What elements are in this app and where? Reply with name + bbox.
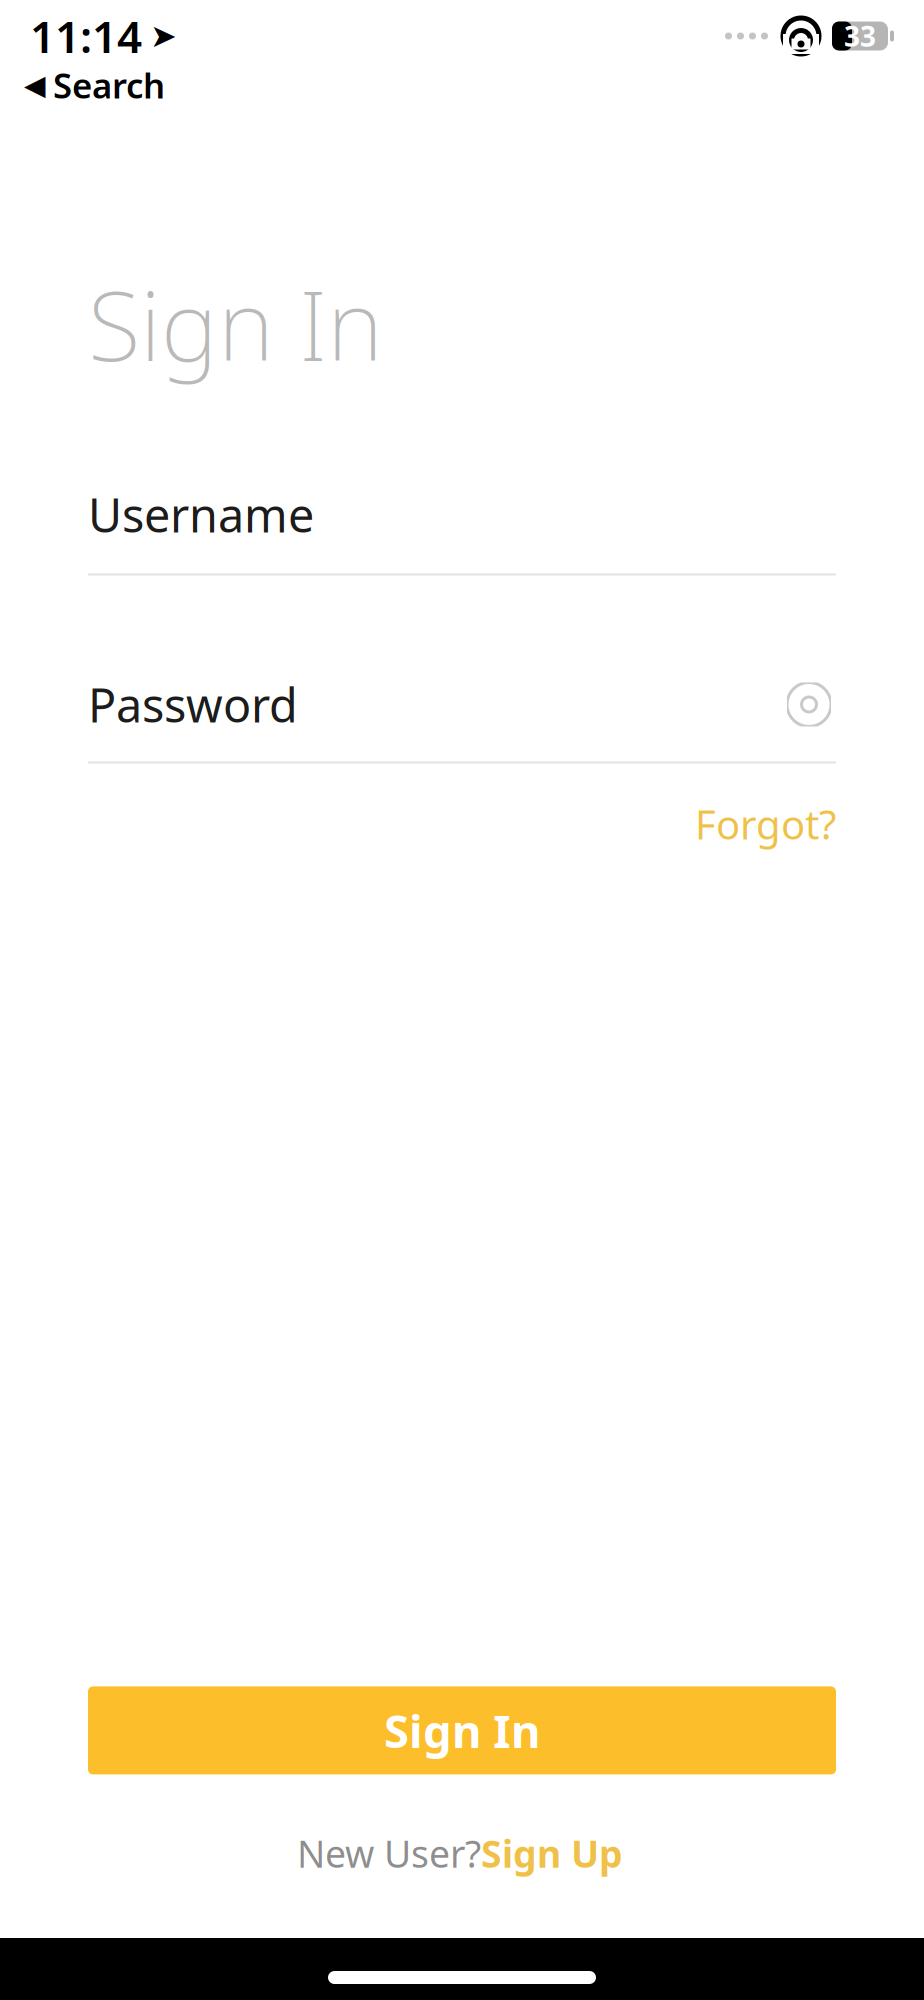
staticText: 11:14 — [30, 7, 142, 65]
staticText: Username — [88, 483, 314, 545]
button[interactable]: Sign In — [88, 1686, 836, 1774]
staticText: Search — [53, 62, 165, 108]
staticText: Sign Up — [481, 1828, 623, 1878]
staticText: Sign In — [384, 1700, 540, 1760]
button[interactable]: Show password — [782, 682, 836, 726]
staticText: 33 — [844, 17, 876, 55]
button[interactable]: Sign Up — [481, 1822, 627, 1884]
button[interactable]: Forgot? — [679, 791, 836, 857]
staticText: Sign In — [88, 260, 383, 387]
staticText: Password — [88, 673, 298, 735]
staticText: ◀ — [24, 69, 46, 101]
staticText: New User? — [297, 1828, 481, 1878]
staticText: Forgot? — [695, 797, 836, 851]
button[interactable]: ◀ — [20, 60, 169, 110]
staticText: ➤ — [150, 18, 177, 54]
